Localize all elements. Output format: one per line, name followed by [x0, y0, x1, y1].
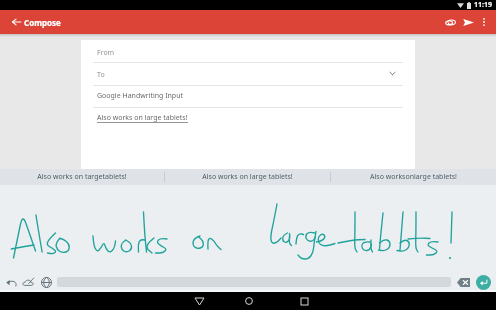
staticText: Also works on large tablets!	[97, 113, 188, 123]
staticText: From	[97, 48, 115, 58]
button[interactable]: Also works on large tablets!	[165, 169, 330, 185]
button[interactable]: Recents	[294, 292, 314, 310]
button[interactable]: Expand recipients	[382, 65, 402, 81]
button[interactable]: Attach file	[438, 10, 462, 34]
staticText: Google Handwriting Input	[97, 91, 184, 101]
button[interactable]: Undo	[2, 273, 20, 291]
button[interactable]: Change language	[37, 273, 55, 291]
button[interactable]: Offline mode	[19, 273, 37, 291]
button[interactable]: Send	[456, 10, 480, 34]
staticText: To	[97, 70, 105, 80]
button[interactable]: Enter	[476, 275, 491, 290]
staticText: Compose	[24, 17, 61, 28]
button[interactable]: Backspace	[455, 274, 471, 290]
staticText: Also worksonlarge tablets!	[370, 172, 457, 182]
button[interactable]: Back	[189, 292, 209, 310]
staticText: Also works on targetablets!	[37, 172, 127, 182]
button[interactable]: Back	[4, 10, 28, 34]
staticText: Also works on large tablets!	[202, 172, 293, 182]
button[interactable]: Home	[239, 292, 259, 310]
button[interactable]: More options	[474, 12, 494, 32]
button[interactable]: Also works on targetablets!	[0, 169, 164, 185]
button[interactable]: Also worksonlarge tablets!	[331, 169, 496, 185]
staticText: 11:19	[474, 0, 492, 10]
